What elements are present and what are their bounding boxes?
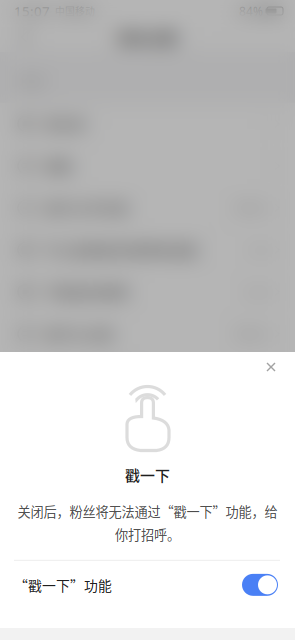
staticText: 隐私设置	[117, 26, 177, 48]
staticText: 戳一下	[125, 464, 170, 486]
staticText: 你打招呼。	[115, 525, 180, 544]
staticText: 84%	[239, 3, 263, 19]
button[interactable]: 谁可以@我	[0, 313, 295, 355]
staticText: 不让他看我的微博和相册	[44, 240, 198, 260]
button[interactable]: 黑名单	[0, 103, 295, 145]
button[interactable]: “戳一下”功能	[0, 561, 295, 609]
staticText: 中国移动	[55, 4, 95, 18]
staticText: 关闭后，粉丝将无法通过“戳一下”功能，给	[17, 502, 277, 521]
staticText: 15:07	[14, 2, 50, 20]
button[interactable]: Close	[256, 352, 286, 382]
staticText: “戳一下”功能	[14, 575, 112, 595]
button[interactable]: 屏蔽	[0, 145, 295, 187]
button[interactable]: 不让他看我的微博和相册	[0, 229, 295, 271]
staticText: 不看他的微博	[44, 282, 128, 302]
button[interactable]: 允许别人推荐我	[0, 355, 295, 397]
button[interactable]: 谁可以评论我	[0, 187, 295, 229]
button[interactable]: 不看他的微博	[0, 271, 295, 313]
